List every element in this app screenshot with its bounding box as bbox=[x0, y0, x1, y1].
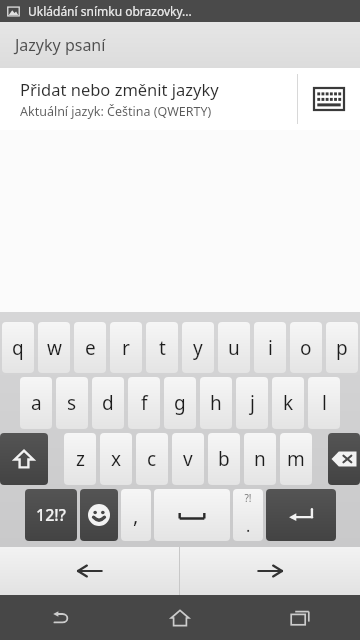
staticText: e bbox=[85, 335, 96, 361]
button[interactable]: Previous bbox=[0, 547, 179, 595]
staticText: , bbox=[133, 502, 139, 529]
button[interactable]: o bbox=[290, 322, 322, 373]
button[interactable]: k bbox=[272, 377, 304, 429]
button[interactable]: Next bbox=[180, 547, 360, 595]
staticText: a bbox=[31, 390, 42, 416]
button[interactable]: f bbox=[128, 377, 160, 429]
other: Shift bbox=[0, 433, 48, 485]
button[interactable]: Backspace bbox=[328, 433, 360, 485]
other: Emoji bbox=[80, 489, 118, 541]
button[interactable]: Emoji bbox=[80, 489, 118, 541]
staticText: g bbox=[174, 390, 186, 416]
staticText: z bbox=[76, 446, 85, 472]
staticText: ?! bbox=[244, 491, 252, 505]
staticText: w bbox=[47, 335, 62, 361]
staticText: m bbox=[287, 446, 305, 472]
button[interactable]: r bbox=[110, 322, 142, 373]
button[interactable]: i bbox=[254, 322, 286, 373]
staticText: p bbox=[336, 335, 348, 361]
button[interactable]: q bbox=[2, 322, 34, 373]
staticText: r bbox=[122, 335, 130, 361]
other: Enter bbox=[266, 489, 336, 541]
staticText: . bbox=[246, 515, 251, 537]
button[interactable]: w bbox=[38, 322, 70, 373]
staticText: i bbox=[268, 335, 273, 361]
staticText: x bbox=[111, 446, 122, 472]
staticText: c bbox=[147, 446, 157, 472]
other: Space bbox=[154, 489, 230, 541]
button[interactable]: Recent apps bbox=[240, 595, 360, 640]
button[interactable]: j bbox=[236, 377, 268, 429]
button[interactable]: x bbox=[100, 433, 132, 485]
button[interactable]: y bbox=[182, 322, 214, 373]
button[interactable]: Shift bbox=[0, 433, 48, 485]
button[interactable]: , bbox=[121, 489, 151, 541]
staticText: s bbox=[67, 390, 77, 416]
staticText: y bbox=[193, 335, 203, 361]
staticText: h bbox=[210, 390, 222, 416]
button[interactable]: n bbox=[244, 433, 276, 485]
button[interactable]: p bbox=[326, 322, 358, 373]
staticText: l bbox=[322, 390, 327, 416]
staticText: d bbox=[102, 390, 114, 416]
button[interactable]: Back bbox=[0, 595, 120, 640]
button[interactable]: e bbox=[74, 322, 106, 373]
staticText: o bbox=[300, 335, 312, 361]
staticText: q bbox=[12, 335, 24, 361]
button[interactable]: h bbox=[200, 377, 232, 429]
button[interactable]: l bbox=[308, 377, 340, 429]
button[interactable]: b bbox=[208, 433, 240, 485]
button[interactable]: Přidat nebo změnit jazyky bbox=[0, 68, 360, 130]
button[interactable]: Home bbox=[120, 595, 240, 640]
button[interactable]: Space bbox=[154, 489, 230, 541]
button[interactable]: t bbox=[146, 322, 178, 373]
staticText: Aktuální jazyk: Čeština (QWERTY) bbox=[20, 103, 212, 120]
button[interactable]: m bbox=[280, 433, 312, 485]
button[interactable]: ?! bbox=[233, 489, 263, 541]
button[interactable]: a bbox=[20, 377, 52, 429]
staticText: Přidat nebo změnit jazyky bbox=[20, 78, 219, 100]
button[interactable]: Enter bbox=[266, 489, 336, 541]
staticText: Jazyky psaní bbox=[15, 34, 106, 56]
staticText: k bbox=[283, 390, 294, 416]
staticText: j bbox=[250, 390, 255, 416]
button[interactable]: u bbox=[218, 322, 250, 373]
staticText: v bbox=[183, 446, 193, 472]
button[interactable]: g bbox=[164, 377, 196, 429]
staticText: 12!? bbox=[36, 504, 66, 526]
button[interactable]: d bbox=[92, 377, 124, 429]
staticText: f bbox=[141, 390, 148, 416]
button[interactable]: 12!? bbox=[25, 489, 77, 541]
button[interactable]: c bbox=[136, 433, 168, 485]
staticText: Ukládání snímku obrazovky... bbox=[28, 3, 192, 19]
button[interactable]: Keyboard settings bbox=[298, 68, 360, 130]
staticText: n bbox=[254, 446, 266, 472]
staticText: u bbox=[228, 335, 240, 361]
button[interactable]: v bbox=[172, 433, 204, 485]
staticText: t bbox=[159, 335, 166, 361]
staticText: b bbox=[218, 446, 230, 472]
button[interactable]: s bbox=[56, 377, 88, 429]
other: Backspace bbox=[328, 433, 360, 485]
button[interactable]: z bbox=[64, 433, 96, 485]
